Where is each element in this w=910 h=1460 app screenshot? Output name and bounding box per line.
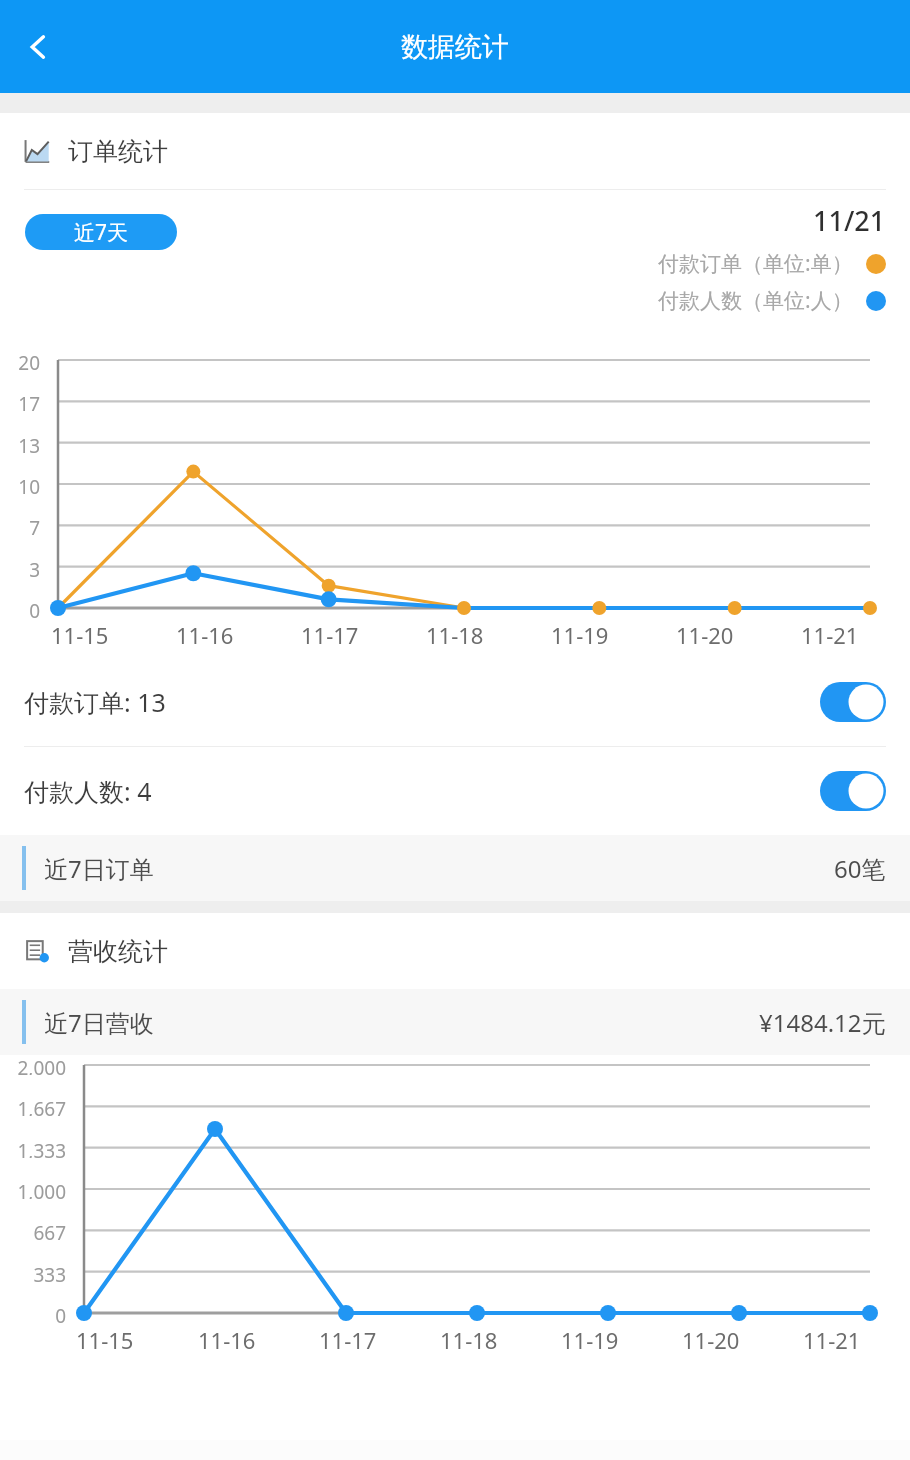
staticText: 17	[18, 391, 40, 411]
staticText: 近7日订单	[44, 852, 154, 885]
button[interactable]: 营收统计	[0, 913, 910, 989]
staticText: 0	[55, 1303, 66, 1323]
staticText: 11/21	[813, 202, 886, 239]
staticText: 11-15	[76, 1325, 134, 1355]
button[interactable]: 近7天	[25, 214, 177, 250]
staticText: 13	[18, 433, 40, 453]
button[interactable]: 订单统计	[0, 113, 910, 189]
staticText: 1,000	[17, 1179, 66, 1199]
staticText: ¥1484.12元	[759, 1006, 886, 1039]
staticText: 7	[29, 515, 40, 535]
staticText: 0	[29, 598, 40, 618]
staticText: 10	[18, 474, 40, 494]
staticText: 近7日营收	[44, 1006, 154, 1039]
staticText: 2,000	[17, 1055, 66, 1075]
staticText: 1,667	[17, 1096, 66, 1116]
button[interactable]: 近7日营收	[0, 989, 910, 1055]
staticText: 付款订单（单位:单）	[658, 249, 853, 278]
staticText: 60笔	[834, 852, 886, 885]
staticText: 付款订单: 13	[24, 685, 166, 719]
staticText: 11-15	[51, 620, 109, 650]
staticText: 11-21	[803, 1325, 861, 1355]
staticText: 营收统计	[68, 936, 168, 967]
staticText: 3	[29, 557, 40, 577]
staticText: 付款人数（单位:人）	[658, 286, 853, 315]
staticText: 11-17	[319, 1325, 377, 1355]
staticText: 333	[33, 1262, 66, 1282]
staticText: 订单统计	[68, 136, 168, 167]
button[interactable]: 付款人数: 4	[0, 747, 910, 835]
staticText: 11-19	[561, 1325, 619, 1355]
button[interactable]: 近7日订单	[0, 835, 910, 901]
staticText: 11-18	[426, 620, 484, 650]
staticText: 667	[33, 1220, 66, 1240]
staticText: 11-16	[176, 620, 234, 650]
staticText: 11-20	[676, 620, 734, 650]
staticText: 11-18	[440, 1325, 498, 1355]
staticText: 20	[18, 350, 40, 370]
staticText: 11-16	[198, 1325, 256, 1355]
staticText: 付款人数: 4	[24, 774, 152, 808]
staticText: 11-20	[682, 1325, 740, 1355]
staticText: 11-19	[551, 620, 609, 650]
staticText: 数据统计	[401, 30, 509, 64]
staticText: 11-17	[301, 620, 359, 650]
staticText: 11-21	[801, 620, 859, 650]
button[interactable]: Back	[6, 15, 70, 79]
staticText: 1,333	[17, 1138, 66, 1158]
button[interactable]: 付款订单: 13	[0, 658, 910, 746]
staticText: 近7天	[74, 218, 129, 247]
